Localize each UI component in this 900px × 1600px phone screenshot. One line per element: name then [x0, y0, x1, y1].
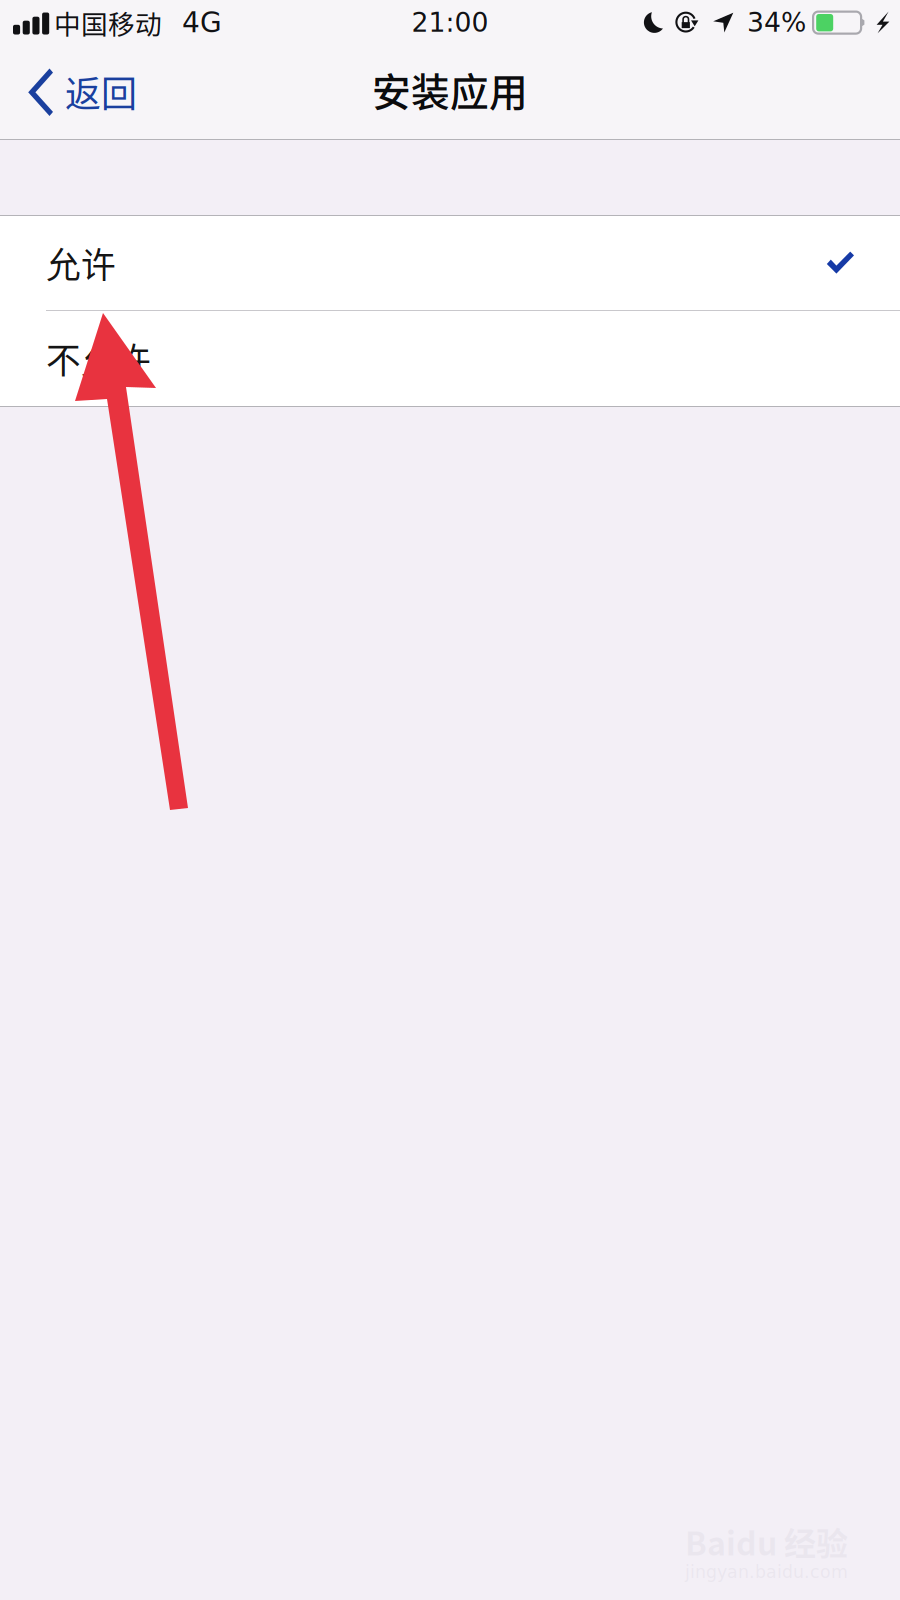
button[interactable]: 返回	[0, 59, 151, 137]
staticText: 安装应用	[372, 61, 528, 117]
staticText: 中国移动	[54, 3, 162, 42]
staticText: 允许	[46, 238, 116, 288]
staticText: 不允许	[46, 333, 151, 384]
staticText: Baidu 经验	[685, 1518, 848, 1565]
button[interactable]: 不允许	[0, 311, 900, 406]
staticText: 4G	[182, 6, 222, 39]
button[interactable]: 允许	[0, 216, 900, 310]
staticText: 34%	[747, 7, 806, 38]
staticText: 21:00	[411, 7, 488, 38]
staticText: 返回	[65, 65, 137, 117]
